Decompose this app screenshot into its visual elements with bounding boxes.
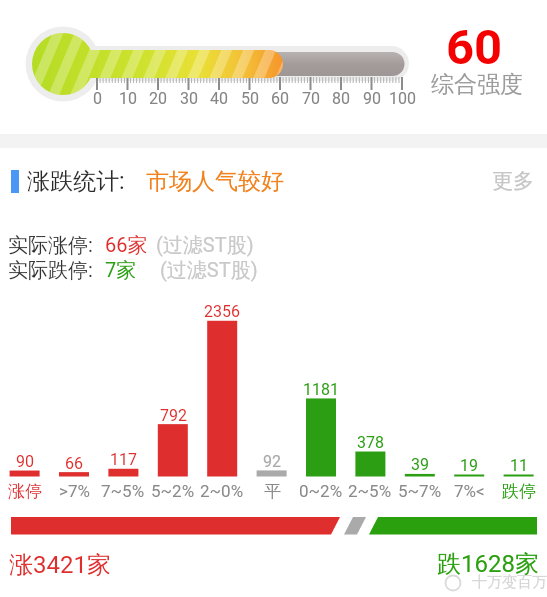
staticText: 涨3421家 bbox=[9, 550, 111, 580]
staticText: 涨停 bbox=[8, 481, 42, 502]
staticText: (过滤ST股) bbox=[160, 258, 258, 283]
staticText: 66 bbox=[65, 454, 83, 473]
staticText: 10 bbox=[119, 89, 137, 108]
staticText: 市场人气较好 bbox=[146, 167, 284, 196]
staticText: 平 bbox=[264, 481, 281, 502]
staticText: 30 bbox=[180, 89, 198, 108]
staticText: 19 bbox=[460, 456, 478, 475]
staticText: 更多 bbox=[492, 168, 534, 194]
staticText: 涨跌统计: bbox=[27, 167, 125, 196]
staticText: 792 bbox=[160, 406, 187, 425]
staticText: 1181 bbox=[303, 380, 339, 399]
staticText: 39 bbox=[411, 455, 429, 474]
staticText: 5~2% bbox=[151, 481, 195, 501]
staticText: 90 bbox=[363, 89, 381, 108]
staticText: 5~7% bbox=[398, 481, 442, 501]
staticText: 7%< bbox=[454, 481, 485, 501]
staticText: 378 bbox=[357, 433, 384, 452]
staticText: 40 bbox=[210, 89, 228, 108]
staticText: 实际涨停: bbox=[8, 233, 93, 258]
staticText: 实际跌停: bbox=[8, 258, 93, 283]
staticText: 20 bbox=[149, 89, 167, 108]
staticText: 117 bbox=[110, 450, 137, 469]
staticText: 60 bbox=[271, 89, 289, 108]
staticText: 综合强度 bbox=[431, 70, 523, 99]
staticText: 66家 bbox=[105, 233, 148, 258]
staticText: 2356 bbox=[204, 302, 240, 321]
staticText: 0~2% bbox=[299, 481, 343, 501]
staticText: 80 bbox=[332, 89, 350, 108]
staticText: 60 bbox=[446, 19, 503, 69]
staticText: 50 bbox=[241, 89, 259, 108]
staticText: >7% bbox=[59, 481, 90, 501]
staticText: 92 bbox=[263, 452, 281, 471]
staticText: 2~0% bbox=[200, 481, 244, 501]
staticText: 跌停 bbox=[502, 481, 536, 502]
staticText: 90 bbox=[16, 452, 34, 471]
staticText: 7~5% bbox=[101, 481, 145, 501]
staticText: 2~5% bbox=[348, 481, 392, 501]
staticText: 7家 bbox=[105, 258, 137, 283]
staticText: 11 bbox=[510, 456, 528, 475]
staticText: 十万变百万 bbox=[472, 573, 547, 592]
staticText: (过滤ST股) bbox=[156, 233, 254, 258]
staticText: 70 bbox=[302, 89, 320, 108]
button[interactable]: 更多 bbox=[485, 166, 541, 196]
staticText: 跌1628家 bbox=[437, 549, 539, 579]
staticText: 100 bbox=[389, 89, 416, 108]
staticText: 0 bbox=[93, 89, 102, 108]
